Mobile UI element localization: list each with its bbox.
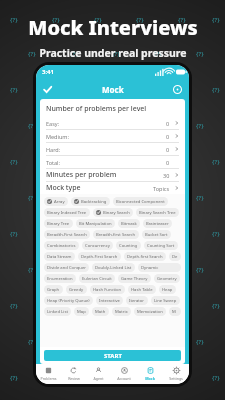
button[interactable]: Breadth-First Search (44, 230, 90, 239)
button[interactable]: Backtracking (71, 197, 110, 206)
button[interactable]: Geometry (154, 274, 180, 283)
button[interactable]: Mock type (46, 182, 179, 194)
button[interactable]: Bit Manipulation (76, 219, 115, 228)
button[interactable]: Depth-First Search (78, 252, 121, 261)
button[interactable]: Array (44, 197, 68, 206)
staticText: {?} (154, 122, 162, 130)
staticText: Binary Indexed Tree (47, 210, 87, 216)
staticText: Binary Search Tree (139, 210, 176, 216)
button[interactable]: Iterator (126, 296, 148, 305)
staticText: Easy: (46, 120, 60, 127)
staticText: Line Sweep (154, 298, 177, 304)
staticText: Linked List (47, 309, 68, 315)
staticText: {?} (196, 122, 204, 130)
staticText: {?} (112, 50, 120, 58)
staticText: Minutes per problem (46, 170, 117, 180)
staticText: {?} (52, 230, 60, 238)
button[interactable]: Hash Table (128, 285, 156, 294)
button[interactable]: Bucket Sort (142, 230, 171, 239)
button[interactable]: Binary Tree (44, 219, 73, 228)
button[interactable]: Divide and Conquer (44, 263, 89, 272)
staticText: Number of problems per level (46, 104, 147, 114)
button[interactable]: Confirm selection (41, 83, 54, 96)
button[interactable]: Memoization (134, 307, 166, 316)
staticText: Topics (153, 185, 170, 192)
button[interactable]: Math (92, 307, 109, 316)
button[interactable]: Dynamic Programming (138, 263, 181, 272)
staticText: {?} (10, 374, 18, 382)
button[interactable]: Biconnected Component (113, 197, 168, 206)
button[interactable]: Interactive (96, 296, 123, 305)
button[interactable]: Agent (86, 364, 111, 384)
staticText: Dynamic Programming (141, 265, 178, 271)
button[interactable]: Concurrency (82, 241, 113, 250)
button[interactable]: Heap (Priority Queue) (44, 296, 93, 305)
staticText: 0 (166, 120, 170, 127)
button[interactable]: Graph (44, 285, 63, 294)
staticText: START (104, 352, 122, 360)
staticText: Hard: (46, 146, 61, 153)
button[interactable]: Depth-first Search (124, 252, 166, 261)
button[interactable]: Map (74, 307, 89, 316)
staticText: Design (172, 254, 178, 260)
staticText: Counting (119, 243, 138, 249)
button[interactable]: Help (171, 83, 184, 96)
staticText: {?} (178, 374, 186, 382)
staticText: {?} (28, 338, 36, 346)
staticText: 0 (166, 133, 170, 140)
button[interactable]: Easy: (46, 117, 179, 130)
button[interactable]: Account (111, 364, 137, 384)
staticText: {?} (94, 302, 102, 310)
button[interactable]: Total: (46, 156, 179, 169)
staticText: {?} (52, 16, 60, 24)
button[interactable]: Binary Indexed Tree (44, 208, 90, 217)
button[interactable]: Medium: (46, 130, 179, 143)
button[interactable]: START (44, 350, 181, 361)
button[interactable]: Hard: (46, 143, 179, 156)
button[interactable]: Enumeration (44, 274, 76, 283)
staticText: Mock type (46, 183, 81, 193)
staticText: Mock (145, 376, 155, 381)
button[interactable]: Game Theory (118, 274, 151, 283)
staticText: Math (95, 309, 106, 315)
staticText: {?} (112, 266, 120, 274)
button[interactable]: Combinatorics (44, 241, 79, 250)
button[interactable]: Heap (159, 285, 176, 294)
button[interactable]: Counting (116, 241, 141, 250)
button[interactable]: Binary Search Tree (136, 208, 179, 217)
staticText: Eulerian Circuit (82, 276, 112, 282)
button[interactable]: Linked List (44, 307, 71, 316)
button[interactable]: Hash Function (90, 285, 125, 294)
button[interactable]: Eulerian Circuit (79, 274, 115, 283)
staticText: {?} (70, 266, 78, 274)
button[interactable]: Brainteaser (143, 219, 172, 228)
staticText: {?} (212, 230, 220, 238)
button[interactable]: Matrix (112, 307, 131, 316)
staticText: Interactive (99, 298, 120, 304)
button[interactable]: Doubly-Linked List (92, 263, 135, 272)
button[interactable]: Binary Search (93, 208, 133, 217)
staticText: Hash Function (93, 287, 122, 293)
button[interactable]: Counting Sort (144, 241, 178, 250)
button[interactable]: Review (61, 364, 86, 384)
staticText: Bitmask (121, 221, 137, 227)
button[interactable]: Settings (163, 364, 189, 384)
button[interactable]: Line Sweep (151, 296, 180, 305)
button[interactable]: Mock (137, 364, 163, 384)
button[interactable]: Breadth-first Search (93, 230, 139, 239)
button[interactable]: Design (169, 252, 181, 261)
button[interactable]: Problems (36, 364, 61, 384)
button[interactable]: Greedy (66, 285, 87, 294)
staticText: Problems (40, 376, 57, 381)
button[interactable]: Minutes per problem (46, 169, 179, 182)
button[interactable]: Merge Sort (169, 307, 181, 316)
button[interactable]: Data Stream (44, 252, 75, 261)
staticText: Heap (Priority Queue) (47, 298, 90, 304)
staticText: {?} (178, 86, 186, 94)
staticText: Breadth-First Search (47, 232, 87, 238)
button[interactable]: Bitmask (118, 219, 140, 228)
staticText: {?} (196, 266, 204, 274)
